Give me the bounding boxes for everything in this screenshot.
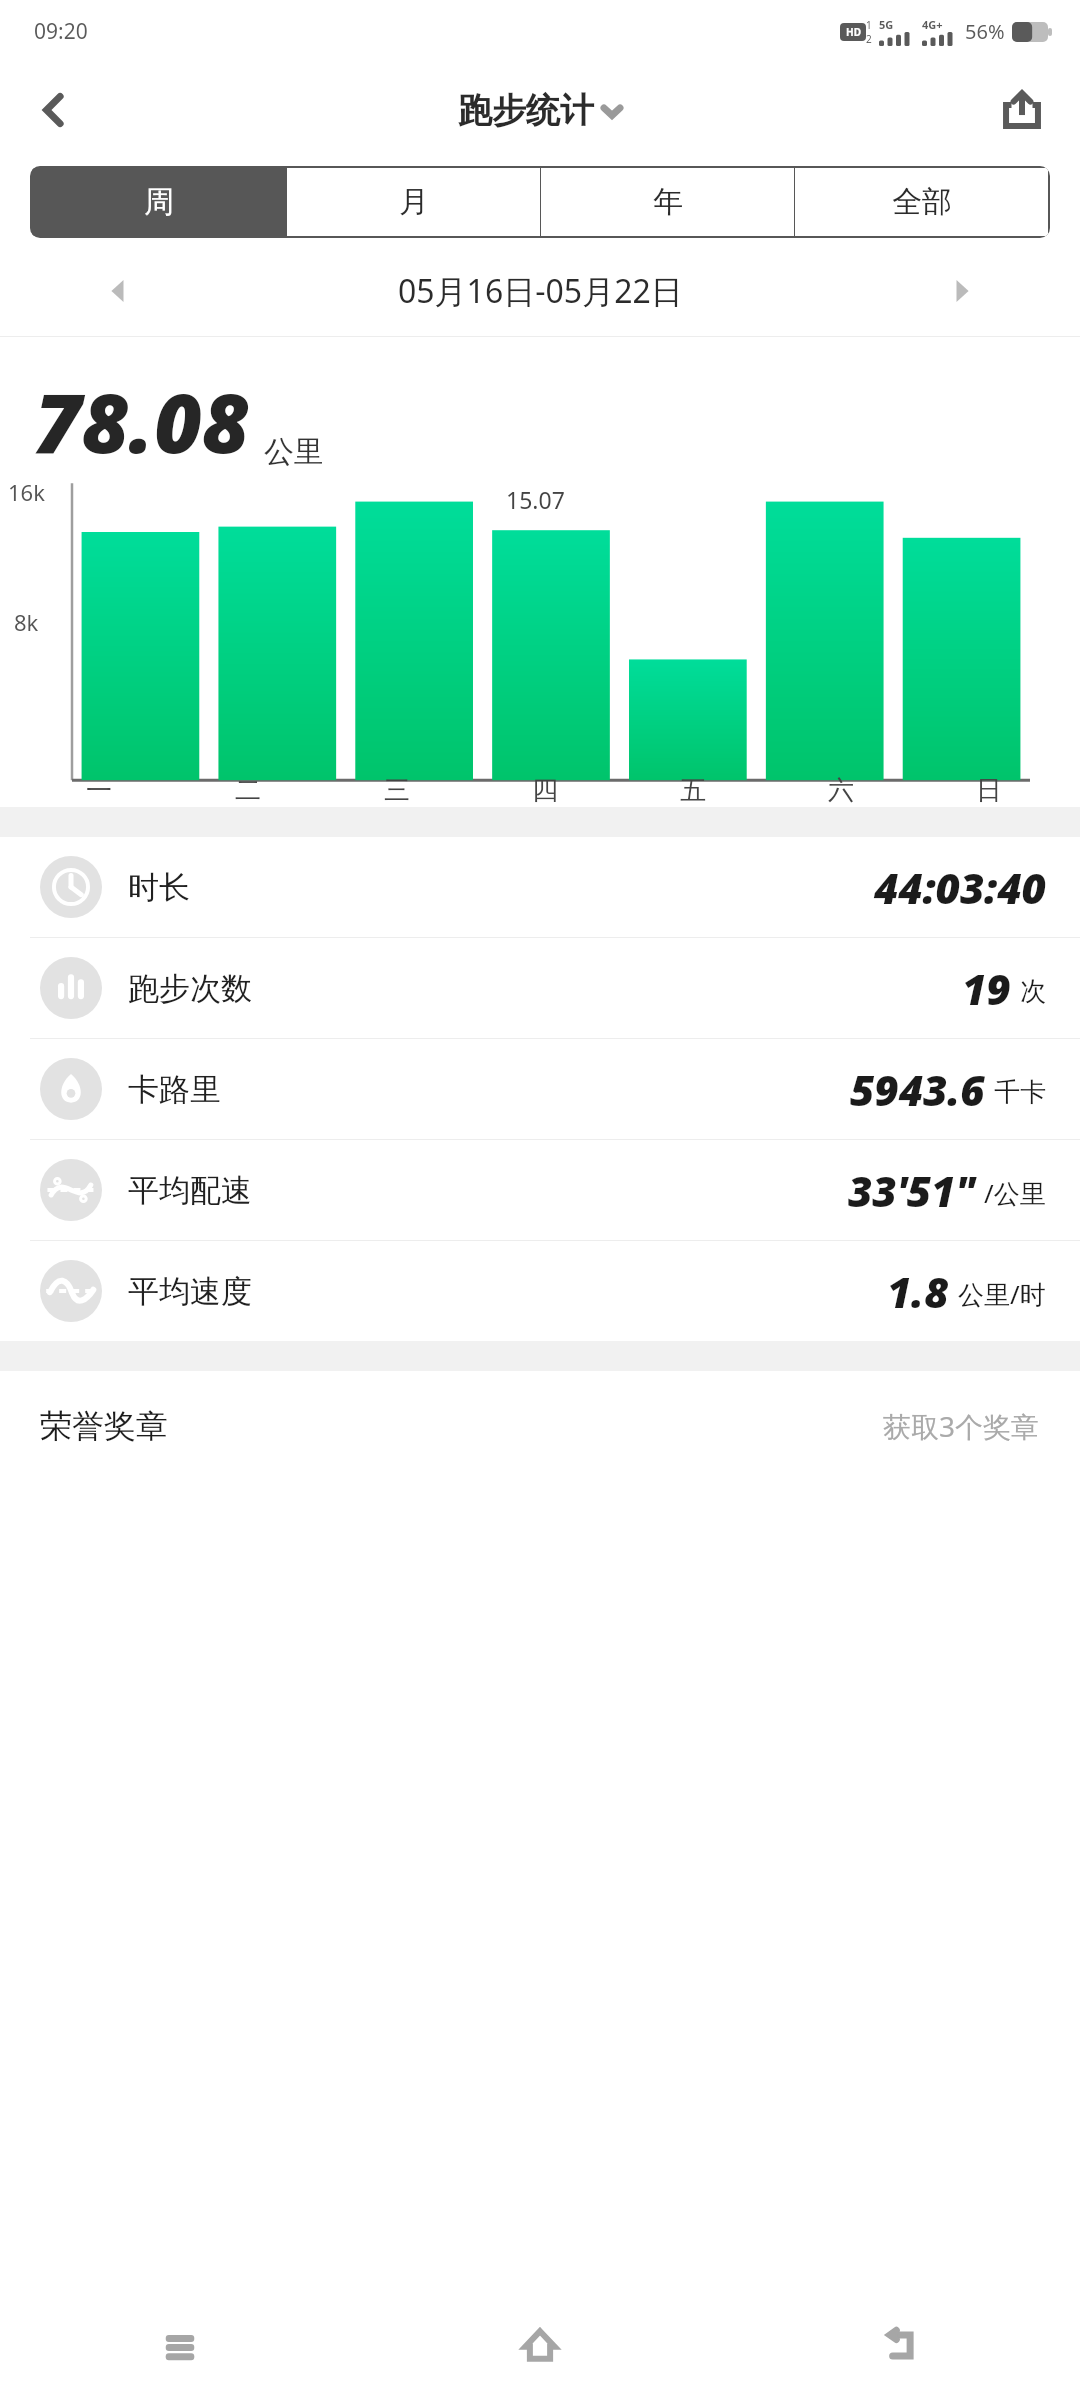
staticText: 月: [399, 183, 429, 221]
button[interactable]: Back: [720, 2290, 1080, 2400]
staticText: 跑步次数: [128, 969, 252, 1008]
staticText: 获取3个奖章: [883, 1407, 1040, 1445]
staticText: 二: [235, 774, 261, 807]
button[interactable]: 月: [287, 168, 540, 236]
staticText: 15.07: [506, 484, 565, 515]
button[interactable]: Back: [18, 74, 90, 146]
staticText: 33'51": [848, 1162, 975, 1219]
staticText: 公里: [264, 433, 324, 471]
button[interactable]: 年: [541, 168, 794, 236]
staticText: 一: [86, 774, 112, 807]
button[interactable]: Recents: [0, 2290, 360, 2400]
button[interactable]: Share: [986, 74, 1058, 146]
button[interactable]: 卡路里: [0, 1039, 1080, 1139]
button[interactable]: 全部: [795, 168, 1048, 236]
staticText: 19: [962, 960, 1011, 1017]
staticText: 5G: [879, 17, 894, 32]
button[interactable]: 平均配速: [0, 1140, 1080, 1240]
button[interactable]: 荣誉奖章: [0, 1371, 1080, 1481]
staticText: /公里: [984, 1175, 1046, 1211]
staticText: 平均速度: [128, 1272, 252, 1311]
staticText: 千卡: [994, 1076, 1046, 1109]
staticText: 平均配速: [128, 1171, 252, 1210]
staticText: 日: [976, 774, 1002, 807]
staticText: 卡路里: [128, 1070, 221, 1109]
staticText: 1.8: [887, 1263, 949, 1320]
staticText: 五: [680, 774, 706, 807]
staticText: 1: [866, 18, 872, 32]
staticText: 2: [866, 32, 872, 46]
button[interactable]: Home: [360, 2290, 720, 2400]
staticText: 四: [532, 774, 558, 807]
button[interactable]: 周: [32, 168, 286, 236]
staticText: 时长: [128, 868, 190, 907]
staticText: HD: [846, 25, 861, 39]
staticText: 全部: [892, 183, 952, 221]
staticText: 8k: [14, 607, 39, 637]
staticText: 跑步统计: [458, 89, 594, 132]
button[interactable]: 跑步次数: [0, 938, 1080, 1038]
staticText: 六: [828, 774, 854, 807]
staticText: 周: [144, 183, 174, 221]
staticText: 56%: [965, 18, 1005, 45]
button[interactable]: Next week: [934, 263, 990, 319]
staticText: 公里/时: [958, 1276, 1046, 1312]
staticText: 次: [1020, 975, 1046, 1008]
staticText: 三: [384, 774, 410, 807]
staticText: 4G+: [922, 17, 943, 32]
staticText: 荣誉奖章: [40, 1406, 168, 1446]
staticText: 年: [653, 183, 683, 221]
button[interactable]: 跑步统计: [458, 89, 622, 132]
staticText: 5943.6: [850, 1061, 985, 1118]
button[interactable]: 时长: [0, 837, 1080, 937]
staticText: 16k: [8, 477, 45, 507]
staticText: 09:20: [34, 17, 88, 46]
button[interactable]: Previous week: [90, 263, 146, 319]
staticText: 78.08: [34, 365, 250, 477]
button[interactable]: 平均速度: [0, 1241, 1080, 1341]
staticText: 05月16日-05月22日: [398, 269, 683, 313]
staticText: 44:03:40: [874, 859, 1046, 916]
